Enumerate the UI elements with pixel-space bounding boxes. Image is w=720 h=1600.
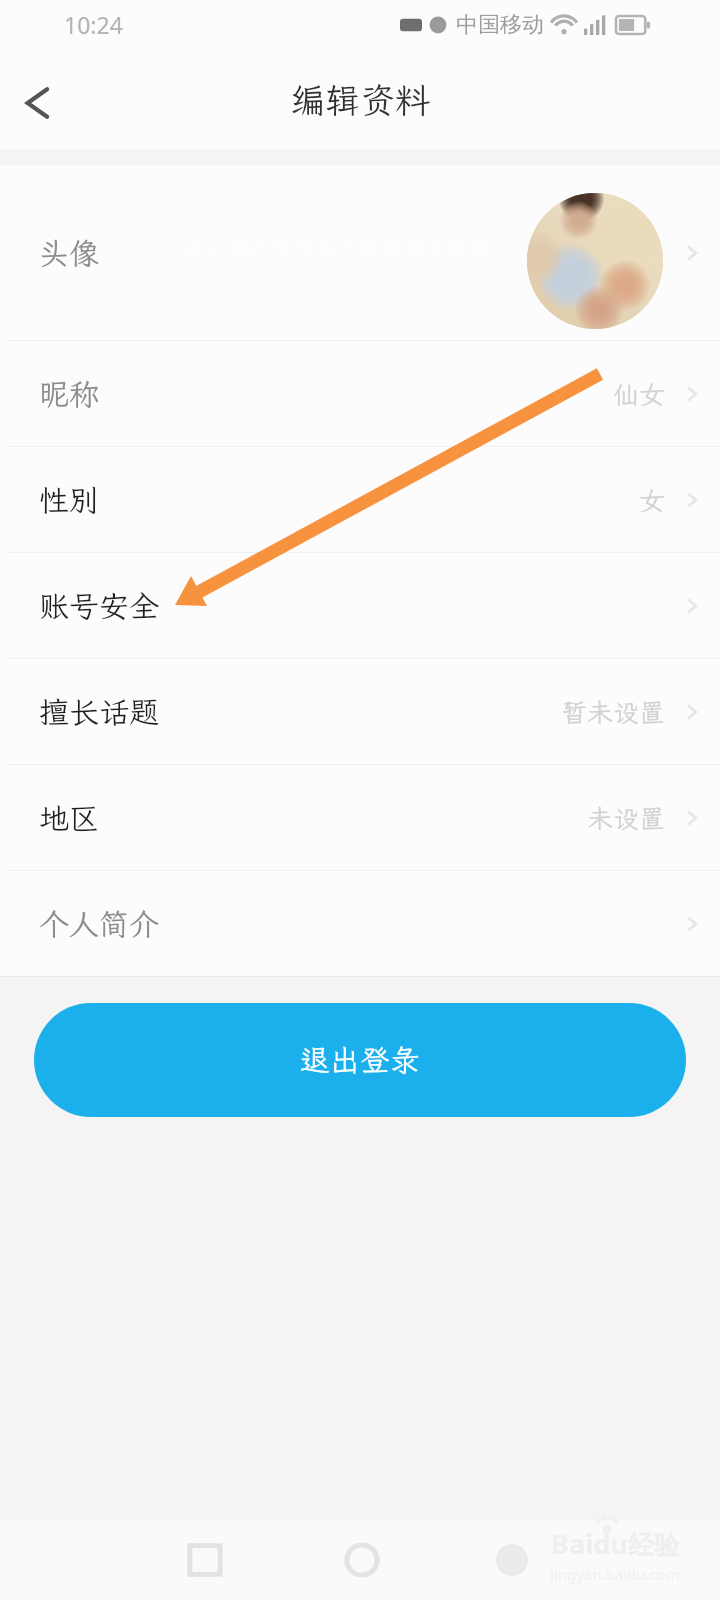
staticText: 账号安全 (39, 586, 159, 626)
staticText: 暂未设置 (561, 695, 666, 729)
button[interactable]: 昵称 (0, 341, 720, 446)
button[interactable]: Back (175, 1530, 235, 1590)
button[interactable]: 个人简介 (0, 871, 720, 976)
staticText: 经验 (628, 1529, 680, 1562)
button[interactable]: 头像 (0, 165, 720, 340)
staticText: 个人简介 (39, 904, 159, 944)
staticText: jingyan.baidu.com (550, 1564, 680, 1584)
staticText: 中国移动 (456, 11, 544, 39)
staticText: 昵称 (39, 374, 99, 414)
button[interactable]: 退出登录 (34, 1003, 686, 1117)
button[interactable]: 账号安全 (0, 553, 720, 658)
button[interactable]: 地区 (0, 765, 720, 870)
staticText: 性别 (39, 480, 99, 520)
button[interactable]: Back (6, 72, 68, 134)
button[interactable]: Home (332, 1530, 392, 1590)
button[interactable]: 性别 (0, 447, 720, 552)
staticText: 10:24 (64, 9, 123, 40)
staticText: 女 (639, 483, 666, 517)
staticText: 未设置 (587, 801, 666, 835)
staticText: 退出登录 (300, 1040, 420, 1080)
staticText: 地区 (39, 798, 99, 838)
button[interactable]: Recents (482, 1530, 542, 1590)
button[interactable]: 擅长话题 (0, 659, 720, 764)
staticText: Baidu (551, 1525, 628, 1562)
staticText: 擅长话题 (39, 692, 159, 732)
staticText: 头像 (39, 233, 99, 273)
staticText: 仙女 (613, 377, 666, 411)
staticText: 编辑资料 (290, 77, 431, 123)
